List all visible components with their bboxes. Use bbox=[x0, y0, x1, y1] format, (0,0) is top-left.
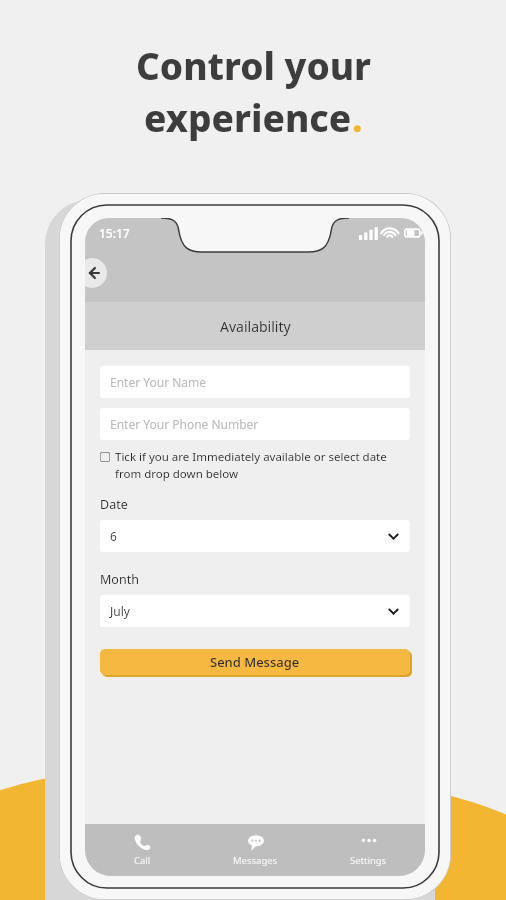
staticText: Tick if you are Immediately available or… bbox=[115, 449, 410, 482]
button[interactable]: Messages bbox=[199, 824, 312, 876]
staticText: Settings bbox=[350, 854, 387, 867]
staticText: 15:17 bbox=[99, 225, 130, 241]
staticText: July bbox=[110, 603, 130, 619]
button[interactable]: Call bbox=[85, 824, 199, 876]
button[interactable]: Send Message bbox=[100, 649, 410, 675]
staticText: 6 bbox=[110, 528, 117, 544]
staticText: Month bbox=[100, 571, 139, 588]
staticText: Date bbox=[100, 496, 128, 513]
staticText: Enter Your Name bbox=[110, 374, 207, 390]
staticText: Availability bbox=[220, 317, 291, 336]
staticText: Control your bbox=[136, 40, 371, 90]
staticText: experience bbox=[144, 92, 352, 142]
staticText: . bbox=[352, 92, 363, 142]
button[interactable]: Tick if you are Immediately available or… bbox=[100, 449, 410, 482]
staticText: Call bbox=[134, 854, 151, 867]
button[interactable]: Enter Your Phone Number bbox=[100, 408, 410, 440]
staticText: Send Message bbox=[210, 653, 300, 671]
staticText: Enter Your Phone Number bbox=[110, 416, 259, 432]
button[interactable]: Enter Your Name bbox=[100, 366, 410, 398]
staticText: Messages bbox=[233, 854, 278, 867]
button[interactable]: July bbox=[100, 595, 410, 627]
button[interactable]: 6 bbox=[100, 520, 410, 552]
button[interactable]: Back bbox=[85, 258, 107, 288]
button[interactable]: Settings bbox=[312, 824, 425, 876]
